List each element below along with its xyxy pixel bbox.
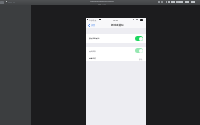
staticText: MessageSettingsActivity <box>90 0 114 3</box>
staticText: 17:47 <box>113 19 118 22</box>
staticText: 通知声音 <box>89 50 96 52</box>
staticText: 默认 <box>139 58 143 60</box>
staticText: 中国联通 <box>89 19 97 21</box>
staticText: 接收消息通知 <box>89 37 100 39</box>
button[interactable]: 接收消息通知 <box>86 34 146 43</box>
button[interactable]: Toggle <box>135 48 143 53</box>
button[interactable]: 通知声音 <box>86 47 146 54</box>
button[interactable]: Toggle <box>135 36 143 41</box>
button[interactable]: Back <box>88 24 96 27</box>
staticText: 设置 <box>91 24 96 27</box>
staticText: 提醒方式 <box>89 57 96 59</box>
other: Back <box>88 24 90 27</box>
staticText: app — src <box>98 3 106 5</box>
staticText: 新消息通知 <box>111 24 124 27</box>
button[interactable]: 提醒方式 <box>86 54 146 61</box>
